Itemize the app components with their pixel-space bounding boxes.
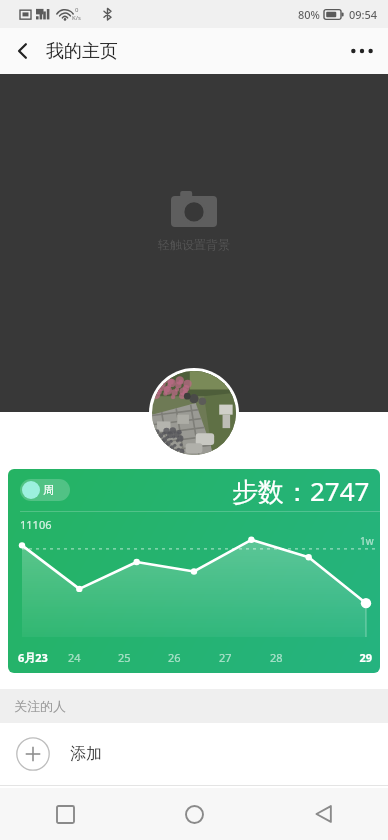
staticText: 添加: [70, 744, 102, 764]
staticText: 轻触设置背景: [158, 237, 230, 252]
staticText: 0: [75, 6, 79, 14]
button[interactable]: Back: [259, 788, 388, 840]
button[interactable]: Recent apps: [0, 788, 130, 840]
staticText: 关注的人: [14, 698, 66, 714]
button[interactable]: Profile photo: [149, 368, 239, 458]
button[interactable]: More options: [336, 28, 388, 74]
staticText: 80%: [298, 7, 320, 22]
staticText: 24: [68, 650, 81, 665]
staticText: 09:54: [349, 7, 378, 22]
staticText: 27: [219, 650, 232, 665]
staticText: K/s: [72, 14, 81, 22]
staticText: 28: [270, 650, 283, 665]
button[interactable]: Home: [130, 788, 259, 840]
button[interactable]: 添加: [0, 723, 388, 785]
button[interactable]: Back: [0, 28, 46, 74]
staticText: 步数：2747: [232, 473, 370, 509]
staticText: 11106: [20, 517, 52, 532]
button[interactable]: 周: [8, 469, 380, 673]
staticText: 6月23: [18, 650, 48, 665]
staticText: 26: [168, 650, 181, 665]
staticText: 25: [118, 650, 131, 665]
staticText: 周: [43, 483, 54, 497]
staticText: 1w: [360, 534, 374, 548]
button[interactable]: Set background: [0, 74, 388, 412]
staticText: 我的主页: [46, 40, 118, 63]
staticText: 29: [321, 650, 372, 665]
button[interactable]: 周: [20, 479, 70, 501]
